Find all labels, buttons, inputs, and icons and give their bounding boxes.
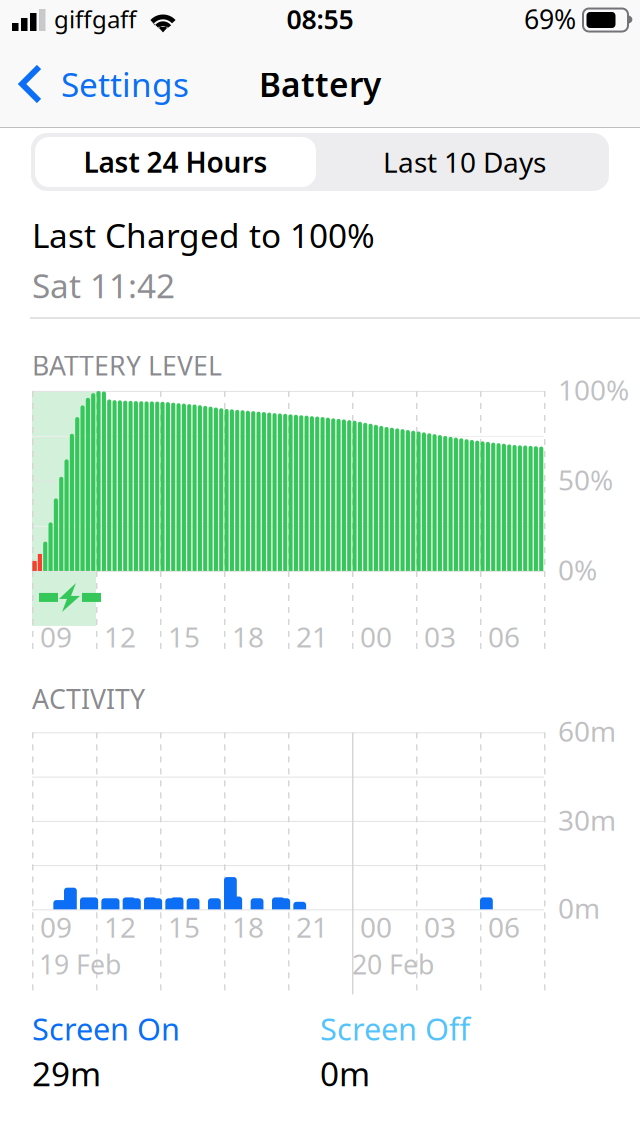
staticText: 30m [558,801,616,839]
staticText: 18 [232,908,264,946]
staticText: giffgaff [54,3,137,35]
staticText: Battery [259,62,381,106]
staticText: 03 [424,908,456,946]
staticText: Screen On [32,1008,180,1049]
staticText: 03 [424,618,456,655]
staticText: 50% [558,461,613,498]
staticText: Sat 11:42 [32,263,175,308]
staticText: 20 Feb [352,946,434,982]
staticText: 06 [488,908,520,946]
staticText: 100% [558,371,629,408]
staticText: Screen Off [320,1008,470,1049]
staticText: 12 [104,618,136,655]
staticText: 09 [40,618,72,655]
button[interactable]: Last 24 Hours [31,133,320,191]
staticText: 0m [558,889,600,927]
button[interactable]: Settings [0,40,201,128]
staticText: 29m [32,1051,101,1095]
staticText: Last Charged to 100% [32,213,375,257]
staticText: ACTIVITY [32,681,145,716]
staticText: 18 [232,618,264,655]
staticText: 0% [558,551,597,588]
staticText: 09 [40,908,72,946]
staticText: 12 [104,908,136,946]
staticText: 0m [320,1051,370,1095]
staticText: 21 [296,618,328,655]
staticText: Last 10 Days [383,143,546,181]
staticText: 19 Feb [39,946,121,982]
staticText: 60m [558,712,616,750]
staticText: 21 [296,908,328,946]
staticText: 06 [488,618,520,655]
staticText: BATTERY LEVEL [32,347,222,383]
staticText: 00 [360,618,392,655]
staticText: 15 [168,618,200,655]
staticText: 00 [360,908,392,946]
staticText: 69% [524,1,576,37]
button[interactable]: Last 10 Days [320,133,609,191]
staticText: 15 [168,908,200,946]
staticText: Settings [61,62,189,106]
staticText: Last 24 Hours [83,143,267,181]
staticText: 08:55 [286,1,353,37]
